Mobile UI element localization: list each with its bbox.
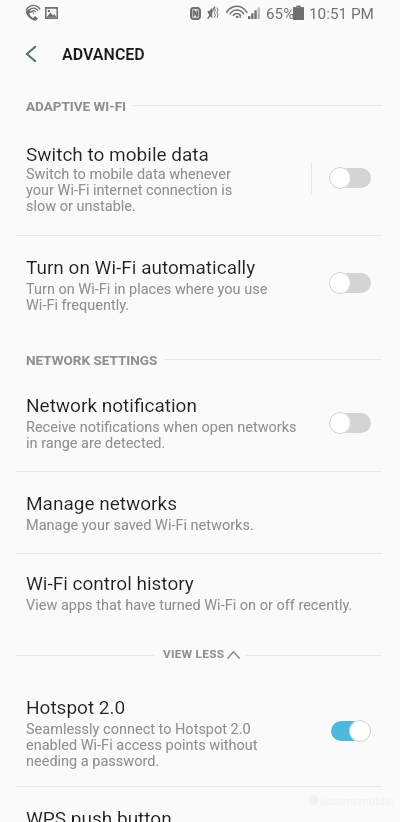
staticText: Network notification xyxy=(26,394,400,416)
staticText: needing a password. xyxy=(26,753,400,770)
button[interactable]: Off xyxy=(326,162,376,194)
button[interactable] xyxy=(0,472,400,552)
staticText: WPS push button xyxy=(26,807,400,822)
staticText: Manage your saved Wi-Fi networks. xyxy=(26,517,400,534)
staticText: View apps that have turned Wi-Fi on or o… xyxy=(26,597,400,614)
staticText: enabled Wi-Fi access points without xyxy=(26,737,400,754)
button[interactable] xyxy=(0,553,400,638)
button[interactable] xyxy=(0,684,400,786)
button[interactable]: Navigate up xyxy=(12,35,50,73)
button[interactable] xyxy=(0,383,400,471)
staticText: Wi-Fi frequently. xyxy=(26,297,400,314)
staticText: 65% xyxy=(266,5,400,23)
staticText: Switch to mobile data xyxy=(26,143,400,165)
staticText: 10:51 PM xyxy=(309,5,400,23)
staticText: Manage networks xyxy=(26,492,400,514)
staticText: Hotspot 2.0 xyxy=(26,696,400,718)
staticText: slow or unstable. xyxy=(26,198,400,215)
staticText: Seamlessly connect to Hotspot 2.0 xyxy=(26,721,400,738)
staticText: your Wi-Fi internet connection is xyxy=(26,182,400,199)
button[interactable]: Off xyxy=(326,267,376,299)
button[interactable] xyxy=(0,236,400,330)
button[interactable] xyxy=(0,131,400,235)
staticText: Turn on Wi-Fi in places where you use xyxy=(26,281,400,298)
staticText: ADAPTIVE WI-FI xyxy=(26,98,400,114)
button[interactable] xyxy=(0,638,400,684)
button[interactable]: On xyxy=(326,715,376,747)
button[interactable]: Off xyxy=(326,407,376,439)
staticText: VIEW LESS xyxy=(163,647,400,661)
staticText: Switch to mobile data whenever xyxy=(26,166,400,183)
staticText: Wi-Fi control history xyxy=(26,572,400,594)
staticText: Receive notifications when open networks xyxy=(26,419,400,436)
staticText: NETWORK SETTINGS xyxy=(26,352,400,368)
staticText: in range are detected. xyxy=(26,435,400,452)
staticText: Turn on Wi-Fi automatically xyxy=(26,256,400,278)
staticText: ADVANCED xyxy=(62,45,400,64)
button[interactable] xyxy=(0,787,400,822)
